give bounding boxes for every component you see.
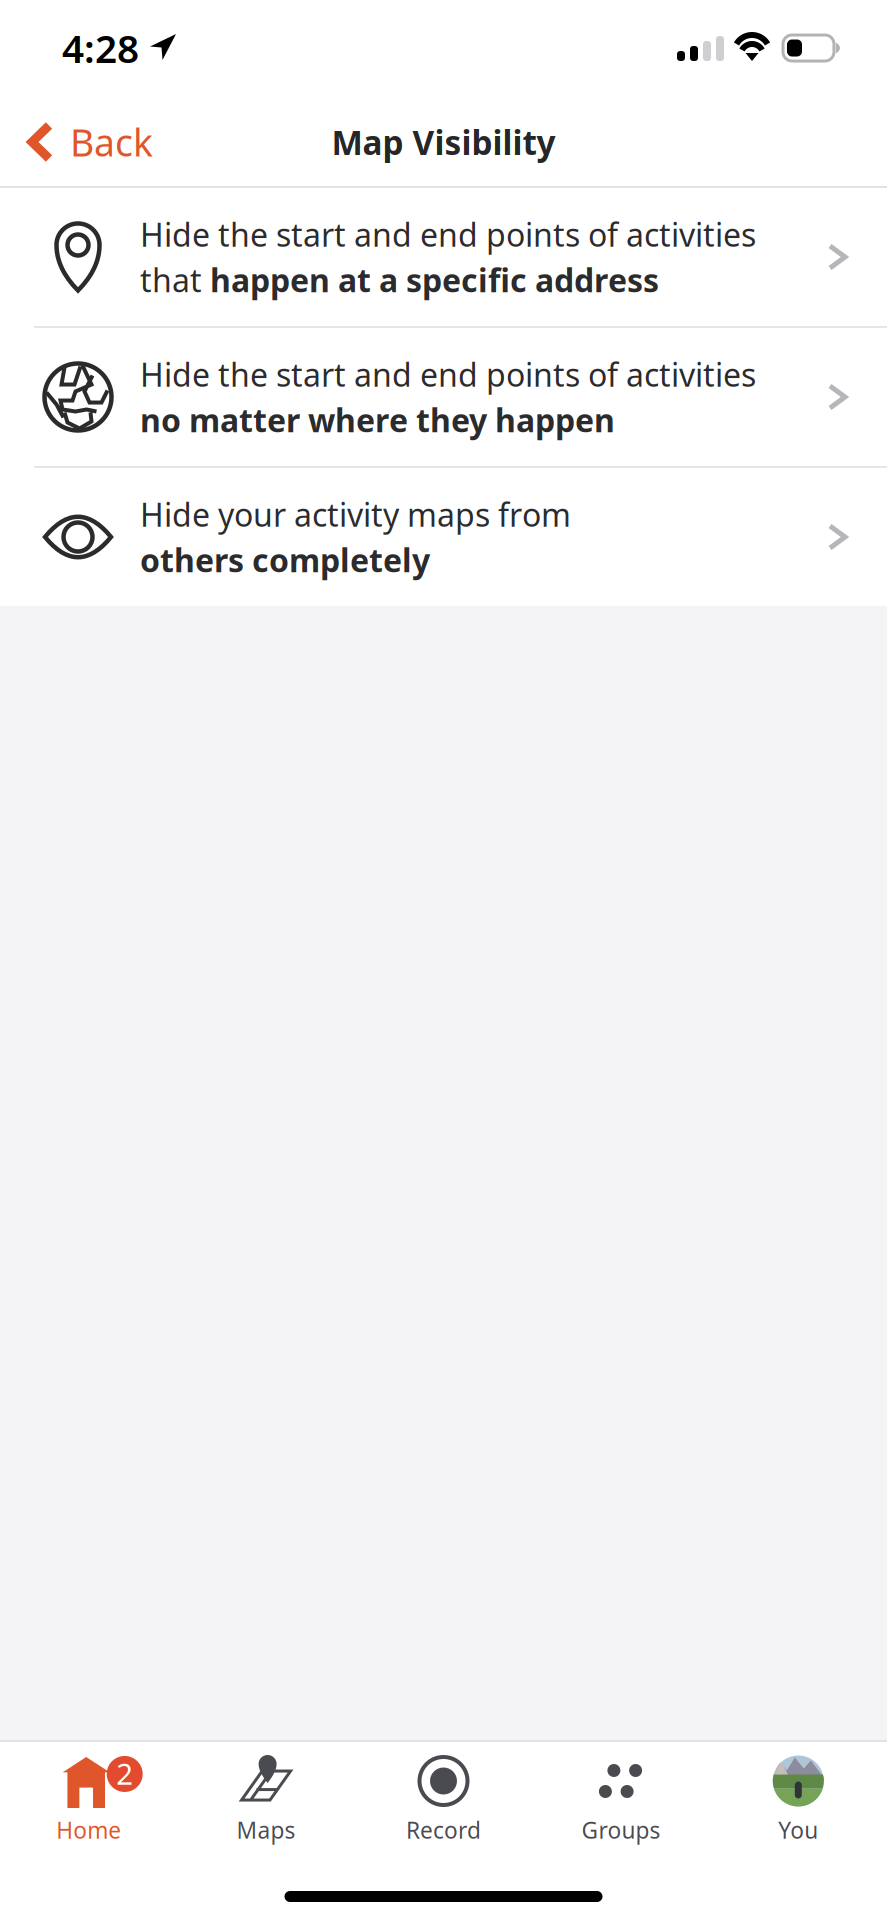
staticText: Home — [56, 1815, 121, 1845]
staticText: You — [778, 1815, 818, 1845]
button[interactable]: Hide the start and end points of activit… — [0, 188, 887, 326]
staticText: 2 — [116, 1754, 133, 1793]
button[interactable]: Record — [355, 1742, 532, 1855]
staticText: Hide the start and end points of activit… — [140, 353, 756, 395]
staticText: Hide your activity maps from — [140, 493, 571, 535]
button[interactable]: 2 — [0, 1742, 177, 1855]
button[interactable]: Groups — [532, 1742, 710, 1855]
staticText: Map Visibility — [331, 120, 555, 164]
button[interactable]: Maps — [177, 1742, 355, 1855]
staticText: 4:28 — [62, 22, 139, 74]
staticText: Groups — [581, 1815, 660, 1845]
staticText: Record — [406, 1815, 481, 1845]
staticText: no matter where they happen — [140, 398, 615, 441]
staticText: others completely — [140, 538, 430, 581]
button[interactable]: Hide your activity maps from — [0, 468, 887, 606]
staticText: Maps — [237, 1815, 296, 1845]
staticText: Back — [70, 117, 153, 167]
button[interactable]: You — [710, 1742, 887, 1855]
button[interactable]: Hide the start and end points of activit… — [0, 328, 887, 466]
staticText: Hide the start and end points of activit… — [140, 213, 756, 255]
staticText: that happen at a specific address — [140, 258, 659, 301]
button[interactable]: Back — [0, 105, 153, 179]
